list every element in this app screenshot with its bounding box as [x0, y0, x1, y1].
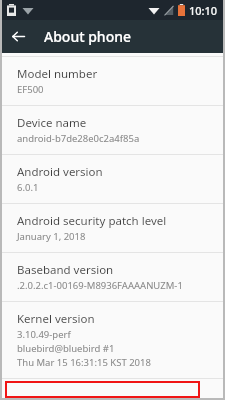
staticText: Kernel version: [17, 311, 95, 327]
staticText: android-b7de28e0c2a4f85a: [17, 132, 140, 145]
staticText: Thu Mar 15 16:31:15 KST 2018: [17, 356, 151, 369]
button[interactable]: Baseband version: [2, 253, 223, 301]
staticText: EF500: [17, 83, 44, 96]
staticText: Baseband version: [17, 262, 114, 278]
staticText: Device name: [17, 115, 87, 131]
staticText: 10:10: [189, 3, 218, 18]
staticText: Model number: [17, 66, 98, 82]
staticText: About phone: [44, 27, 132, 46]
button[interactable]: Android version: [2, 155, 223, 203]
staticText: 3.10.49-perf: [17, 328, 71, 341]
button[interactable]: Back: [2, 20, 35, 53]
button[interactable]: Model number: [2, 57, 223, 105]
staticText: January 1, 2018: [17, 230, 86, 243]
staticText: .2.0.2.c1-00169-M8936FAAAANUZM-1: [17, 279, 183, 292]
button[interactable]: Build number: [5, 381, 200, 398]
button[interactable]: Kernel version: [2, 302, 223, 378]
button[interactable]: Device name: [2, 106, 223, 154]
staticText: 6.0.1: [17, 181, 39, 194]
staticText: Android version: [17, 164, 103, 180]
staticText: bluebird@bluebird #1: [17, 342, 115, 355]
button[interactable]: Android security patch level: [2, 204, 223, 252]
staticText: Android security patch level: [17, 213, 167, 229]
